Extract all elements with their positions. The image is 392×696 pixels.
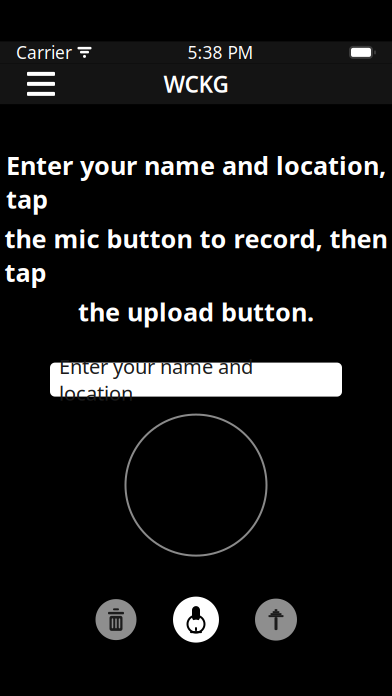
button[interactable]: Menu (17, 65, 65, 103)
staticText: Enter your name and location, tap (6, 148, 386, 216)
staticText: Enter your name and location (59, 353, 253, 406)
staticText: the mic button to record, then tap (4, 222, 387, 289)
staticText: the upload button. (78, 295, 314, 329)
button[interactable]: Delete recording (89, 593, 143, 647)
button[interactable]: Record (169, 593, 223, 647)
staticText: WCKG (163, 69, 228, 99)
button[interactable]: Upload recording (249, 593, 303, 647)
staticText: Carrier (16, 41, 72, 64)
staticText: 5:38 PM (187, 41, 253, 64)
